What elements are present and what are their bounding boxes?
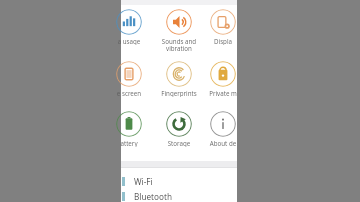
button[interactable]: a usage	[111, 9, 147, 45]
button[interactable]: attery	[111, 111, 147, 147]
button[interactable]: Sounds and vibration	[157, 9, 201, 53]
button[interactable]: Wi-Fi	[121, 171, 237, 191]
staticText: Storage	[157, 139, 201, 147]
button[interactable]: About de	[205, 111, 241, 147]
staticText: Wi-Fi	[134, 176, 153, 187]
staticText: attery	[111, 139, 147, 147]
button[interactable]: Bluetooth	[121, 191, 237, 202]
staticText: e screen	[111, 89, 147, 97]
staticText: a usage	[111, 37, 147, 45]
staticText: Private m	[205, 89, 241, 97]
staticText: Displa	[205, 37, 241, 45]
staticText: About de	[205, 139, 241, 147]
staticText: Sounds and vibration	[157, 37, 201, 53]
staticText: Fingerprints	[157, 89, 201, 97]
staticText: Bluetooth	[134, 191, 172, 202]
button[interactable]: Displa	[205, 9, 241, 45]
button[interactable]: e screen	[111, 61, 147, 97]
button[interactable]: Private m	[205, 61, 241, 97]
button[interactable]: Fingerprints	[157, 61, 201, 97]
button[interactable]: Storage	[157, 111, 201, 147]
